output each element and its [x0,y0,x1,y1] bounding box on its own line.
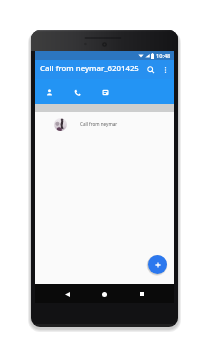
staticText: Call from neymar_6201425 [40,63,142,74]
button[interactable]: Contacts [35,79,63,104]
staticText: 10:48 [156,52,171,60]
button[interactable]: Recent apps [135,287,149,301]
button[interactable]: Back [60,287,74,301]
button[interactable]: Home [97,287,111,301]
button[interactable]: Call from neymar [35,112,174,136]
button[interactable]: Calls [63,79,91,104]
button[interactable]: Chats [91,79,119,104]
staticText: Call from neymar [80,121,118,127]
button[interactable]: Search [143,60,158,79]
button[interactable]: More options [160,60,171,79]
button[interactable]: New message [148,255,167,274]
